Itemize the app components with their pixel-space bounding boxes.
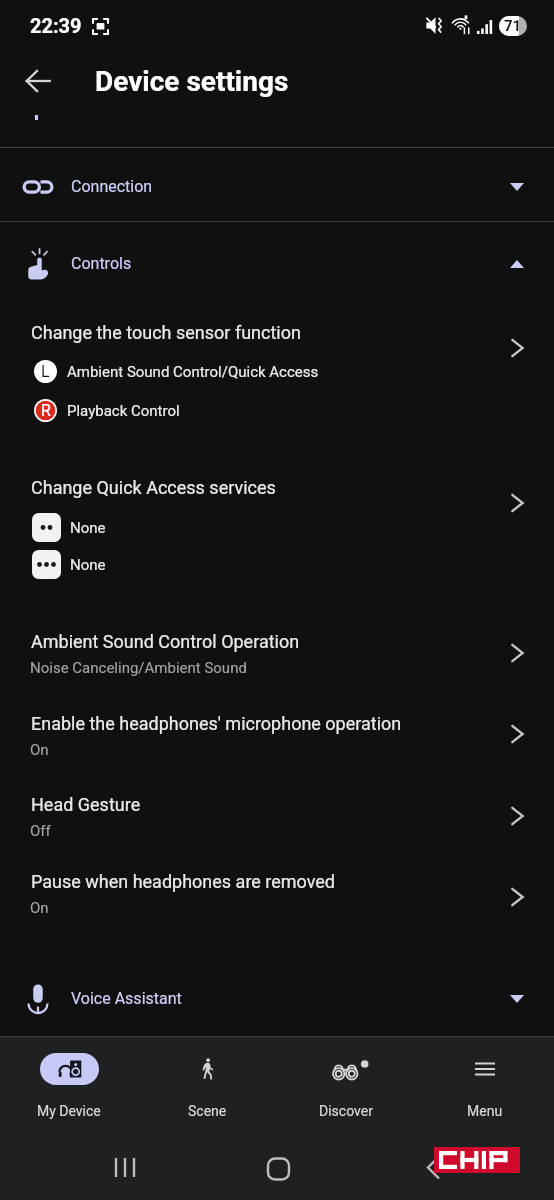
button[interactable]: Ambient Sound Control Operation: [0, 618, 554, 688]
staticText: Noise Canceling/Ambient Sound: [30, 659, 247, 677]
button[interactable]: Head Gesture: [0, 781, 554, 851]
button[interactable]: Change Quick Access services: [0, 463, 554, 591]
button[interactable]: Controls: [0, 221, 554, 295]
staticText: R: [41, 401, 51, 420]
staticText: Connection: [71, 177, 153, 196]
button[interactable]: Back: [14, 57, 62, 105]
staticText: L: [41, 362, 50, 381]
button[interactable]: Scene: [138, 1037, 276, 1137]
button[interactable]: Menu: [415, 1037, 554, 1137]
staticText: 71: [504, 17, 522, 35]
staticText: Ambient Sound Control Operation: [31, 631, 300, 652]
staticText: Controls: [71, 254, 132, 273]
staticText: Voice Assistant: [71, 989, 182, 1008]
staticText: My Device: [37, 1103, 101, 1119]
button[interactable]: Enable the headphones' microphone operat…: [0, 700, 554, 770]
button[interactable]: Discover: [276, 1037, 415, 1137]
staticText: Playback Control: [67, 402, 180, 420]
staticText: Menu: [467, 1103, 503, 1119]
staticText: Change Quick Access services: [31, 477, 276, 498]
button[interactable]: Change the touch sensor function: [0, 308, 554, 430]
staticText: On: [30, 741, 49, 759]
staticText: Head Gesture: [31, 794, 141, 815]
staticText: Off: [30, 822, 51, 840]
staticText: Pause when headphones are removed: [31, 871, 336, 892]
staticText: 22:39: [30, 14, 82, 37]
button[interactable]: My Device: [0, 1037, 138, 1137]
button[interactable]: Voice Assistant: [0, 961, 554, 1036]
staticText: None: [70, 556, 106, 574]
staticText: Ambient Sound Control/Quick Access: [67, 363, 319, 381]
staticText: Change the touch sensor function: [31, 322, 301, 343]
staticText: Enable the headphones' microphone operat…: [31, 713, 402, 734]
staticText: Scene: [188, 1103, 227, 1119]
button[interactable]: Pause when headphones are removed: [0, 858, 554, 928]
staticText: None: [70, 519, 106, 537]
staticText: Device settings: [95, 65, 289, 98]
button[interactable]: Connection: [0, 147, 554, 221]
staticText: On: [30, 899, 49, 917]
staticText: Discover: [319, 1103, 373, 1119]
